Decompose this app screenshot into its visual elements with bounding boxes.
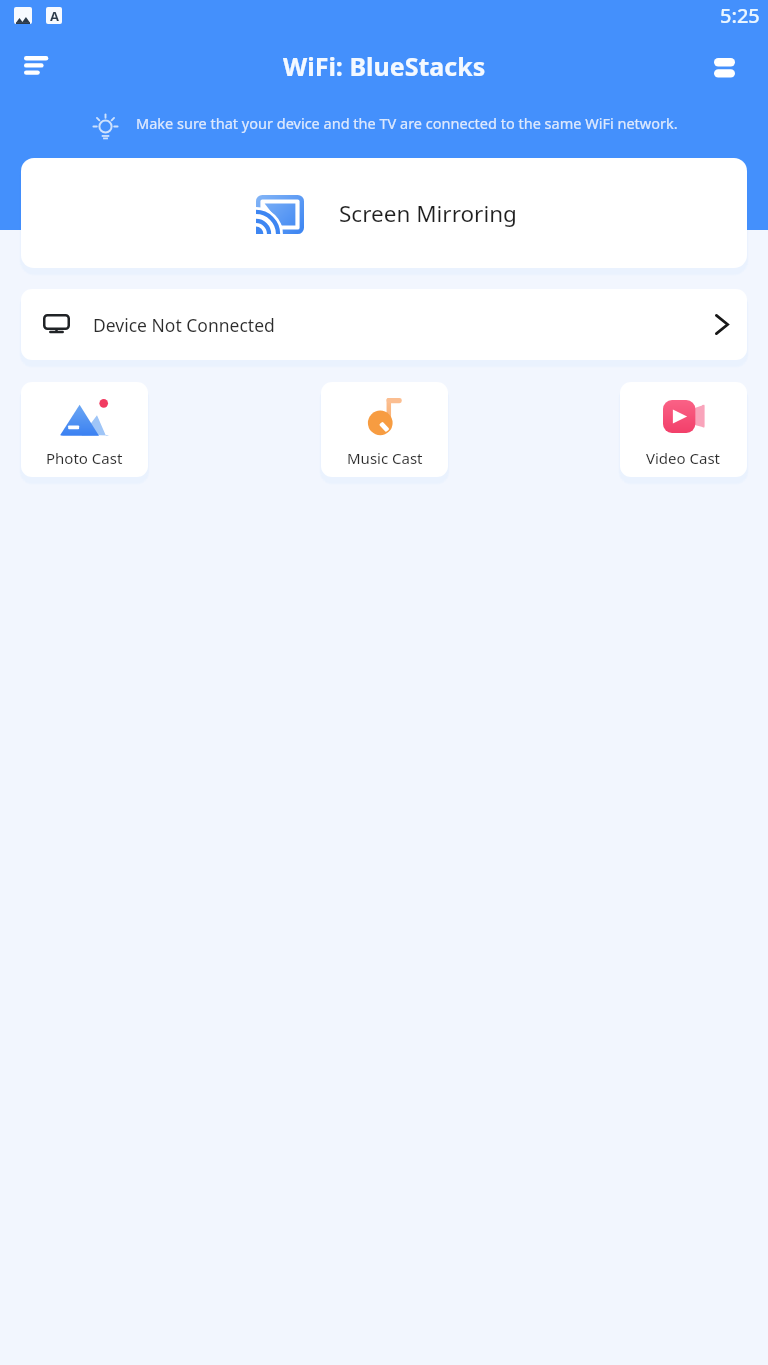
button[interactable]: Menu (13, 42, 59, 88)
button[interactable]: Music Cast (321, 382, 448, 477)
staticText: Device Not Connected (93, 313, 275, 337)
staticText: WiFi: BlueStacks (283, 49, 486, 83)
staticText: Video Cast (646, 448, 721, 468)
staticText: Make sure that your device and the TV ar… (136, 113, 678, 133)
button[interactable]: More options (701, 44, 747, 90)
button[interactable]: Screen Mirroring (21, 158, 747, 268)
button[interactable]: Photo Cast (21, 382, 148, 477)
button[interactable]: Device Not Connected (21, 289, 747, 360)
staticText: Photo Cast (46, 448, 123, 468)
staticText: Screen Mirroring (339, 198, 517, 229)
button[interactable]: Video Cast (620, 382, 747, 477)
staticText: A (50, 7, 59, 24)
staticText: Music Cast (347, 448, 423, 468)
staticText: 5:25 (720, 2, 760, 29)
